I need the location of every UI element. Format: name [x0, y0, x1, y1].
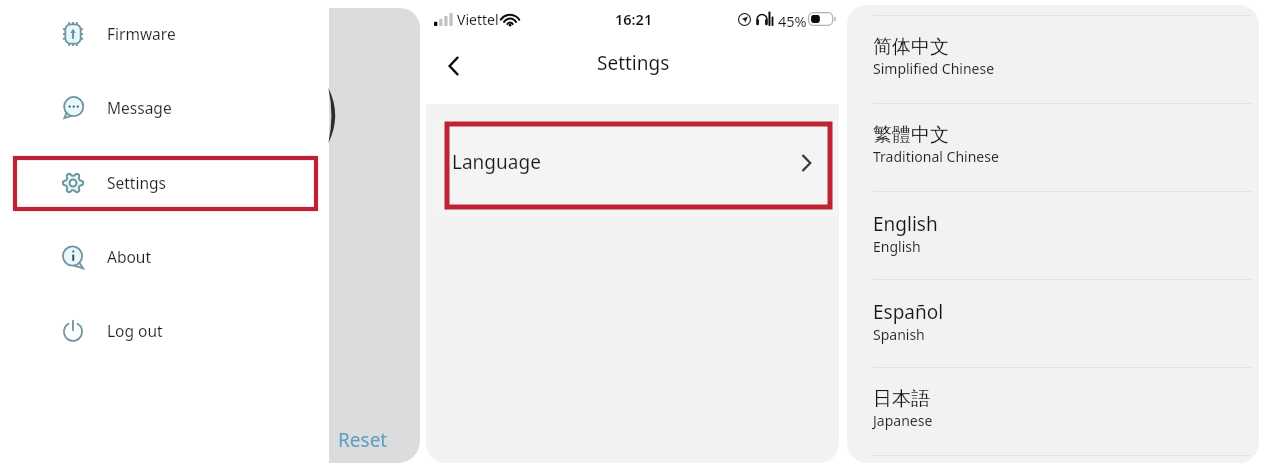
staticText: Language	[452, 149, 541, 175]
button[interactable]: Firmware	[0, 6, 320, 62]
button[interactable]: About	[0, 229, 320, 285]
button[interactable]: Back	[432, 44, 476, 88]
staticText: About	[107, 246, 151, 267]
staticText: Firmware	[107, 23, 176, 44]
button[interactable]: Message	[0, 80, 320, 136]
staticText: Simplified Chinese	[873, 59, 995, 78]
button[interactable]: Settings	[0, 155, 320, 211]
staticText: Settings	[597, 50, 670, 76]
staticText: Traditional Chinese	[873, 147, 999, 166]
button[interactable]: 日本語	[847, 367, 1259, 455]
staticText: Message	[107, 97, 172, 118]
staticText: 16:21	[615, 9, 653, 29]
staticText: Español	[873, 299, 944, 325]
staticText: Log out	[107, 320, 163, 341]
staticText: Viettel	[457, 10, 499, 29]
button[interactable]: 繁體中文	[847, 103, 1259, 191]
staticText: Japanese	[873, 411, 933, 430]
staticText: English	[873, 211, 938, 237]
button[interactable]: Reset	[332, 421, 394, 459]
button[interactable]: Language	[426, 118, 839, 218]
staticText: English	[873, 237, 921, 256]
staticText: 日本語	[873, 387, 930, 411]
staticText: Spanish	[873, 325, 925, 344]
staticText: 简体中文	[873, 35, 949, 59]
button[interactable]: English	[847, 191, 1259, 279]
button[interactable]: Español	[847, 279, 1259, 367]
button[interactable]: Log out	[0, 303, 320, 359]
button[interactable]: 简体中文	[847, 15, 1259, 103]
staticText: Reset	[338, 427, 388, 453]
staticText: 45%	[778, 11, 807, 31]
staticText: Settings	[107, 172, 166, 193]
staticText: 繁體中文	[873, 123, 949, 147]
